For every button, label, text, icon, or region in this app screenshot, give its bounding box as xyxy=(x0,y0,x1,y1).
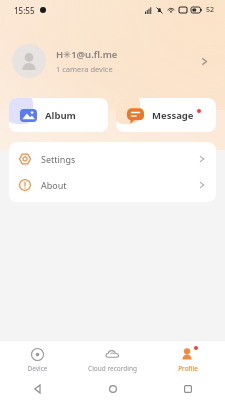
button[interactable]: Profile xyxy=(150,341,225,378)
staticText: 15:55 xyxy=(14,5,35,16)
button[interactable]: Recents xyxy=(150,378,225,400)
staticText: Message xyxy=(152,109,194,122)
button[interactable]: Settings xyxy=(9,146,216,172)
staticText: About xyxy=(41,179,198,191)
button[interactable]: Home xyxy=(75,378,150,400)
button[interactable]: Back xyxy=(0,378,75,400)
button[interactable]: Cloud recording xyxy=(75,341,150,378)
button[interactable]: H✳1@u.fl.me xyxy=(0,38,225,84)
button[interactable]: Device xyxy=(0,341,75,378)
staticText: H✳1@u.fl.me xyxy=(56,48,118,61)
button[interactable]: Album xyxy=(9,98,108,132)
staticText: 1 camera device xyxy=(56,64,113,74)
button[interactable]: Message xyxy=(116,98,216,132)
staticText: Device xyxy=(27,364,48,373)
other: Open account details xyxy=(195,52,213,70)
staticText: 52 xyxy=(206,5,215,15)
staticText: Settings xyxy=(41,153,198,165)
button[interactable]: About xyxy=(9,172,216,198)
staticText: Album xyxy=(45,109,76,122)
staticText: Profile xyxy=(178,364,198,373)
staticText: Cloud recording xyxy=(88,364,137,373)
